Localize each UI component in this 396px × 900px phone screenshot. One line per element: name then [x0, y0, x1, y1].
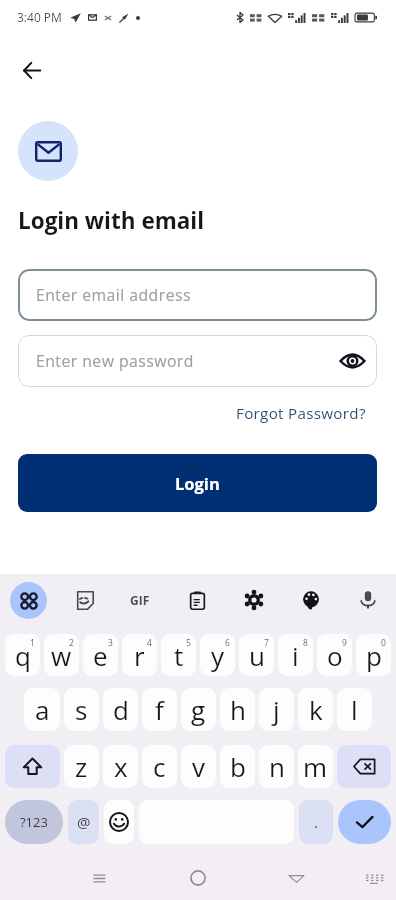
staticText: w — [51, 638, 72, 673]
button[interactable]: Login — [18, 454, 377, 512]
button[interactable]: n — [259, 745, 294, 788]
staticText: z — [75, 749, 88, 784]
staticText: a — [35, 692, 50, 727]
button[interactable]: Home — [178, 858, 218, 898]
staticText: k — [309, 692, 323, 727]
staticText: y — [211, 638, 225, 673]
button[interactable]: v — [181, 745, 216, 788]
button[interactable]: @ — [68, 800, 99, 844]
button[interactable]: p — [356, 634, 391, 676]
button[interactable]: r — [122, 634, 157, 676]
button[interactable]: t — [161, 634, 196, 676]
button[interactable]: c — [142, 745, 177, 788]
staticText: e — [93, 638, 108, 673]
button[interactable]: y — [200, 634, 235, 676]
button[interactable]: e — [83, 634, 118, 676]
button[interactable]: Enter — [338, 800, 391, 844]
button[interactable]: Recents — [79, 858, 119, 898]
button[interactable]: b — [220, 745, 255, 788]
staticText: c — [153, 749, 166, 784]
button[interactable]: ?123 — [5, 800, 63, 844]
staticText: l — [351, 692, 358, 727]
button[interactable]: a — [24, 688, 60, 731]
staticText: j — [273, 692, 280, 727]
staticText: 3 — [108, 637, 113, 649]
button[interactable]: Stickers — [65, 581, 103, 619]
button[interactable]: i — [278, 634, 313, 676]
staticText: 6 — [225, 637, 230, 649]
staticText: x — [114, 749, 128, 784]
staticText: t — [174, 638, 184, 673]
staticText: 3:40 PM — [17, 9, 62, 25]
button[interactable]: Enter email address — [18, 269, 377, 321]
button[interactable]: j — [259, 688, 294, 731]
button[interactable]: Forgot Password? — [232, 400, 370, 427]
button[interactable]: w — [44, 634, 79, 676]
button[interactable]: Clipboard — [178, 581, 216, 619]
staticText: GIF — [130, 592, 150, 608]
button[interactable]: s — [64, 688, 99, 731]
staticText: m — [303, 749, 328, 784]
button[interactable]: q — [5, 634, 40, 676]
staticText: g — [191, 692, 206, 727]
staticText: Login — [175, 472, 220, 494]
staticText: r — [134, 638, 145, 673]
button[interactable]: Backspace — [337, 745, 391, 788]
button[interactable]: z — [64, 745, 99, 788]
button[interactable]: Back — [276, 858, 316, 898]
staticText: v — [192, 749, 205, 784]
staticText: u — [249, 638, 265, 673]
staticText: Login with email — [18, 205, 205, 236]
button[interactable]: Settings — [235, 581, 273, 619]
button[interactable]: Keyboard toolbar — [10, 582, 47, 619]
button[interactable]: x — [103, 745, 138, 788]
staticText: i — [292, 638, 299, 673]
staticText: 4 — [147, 637, 152, 649]
button[interactable]: Back — [13, 52, 50, 89]
button[interactable]: Show password — [335, 344, 369, 378]
button[interactable]: Shift — [5, 745, 60, 788]
staticText: . — [314, 812, 318, 832]
staticText: 0 — [381, 637, 386, 649]
button[interactable]: u — [239, 634, 274, 676]
button[interactable]: f — [142, 688, 177, 731]
staticText: Enter email address — [36, 284, 191, 306]
staticText: q — [15, 638, 31, 673]
staticText: 2 — [69, 637, 74, 649]
button[interactable]: h — [220, 688, 255, 731]
staticText: Enter new password — [36, 350, 194, 372]
button[interactable]: Keyboard switcher — [354, 858, 394, 898]
button[interactable]: . — [299, 800, 333, 844]
button[interactable]: Enter new password — [18, 335, 377, 387]
staticText: @ — [77, 812, 91, 832]
staticText: 9 — [342, 637, 347, 649]
staticText: s — [75, 692, 88, 727]
button[interactable]: GIF — [121, 581, 159, 619]
button[interactable]: m — [298, 745, 333, 788]
staticText: d — [113, 692, 129, 727]
staticText: f — [155, 692, 164, 727]
staticText: 7 — [264, 637, 269, 649]
staticText: b — [230, 749, 246, 784]
button[interactable]: o — [317, 634, 352, 676]
staticText: p — [366, 638, 382, 673]
button[interactable]: Voice input — [349, 581, 387, 619]
staticText: 8 — [303, 637, 308, 649]
staticText: ?123 — [20, 813, 48, 831]
staticText: n — [269, 749, 285, 784]
staticText: 1 — [30, 637, 35, 649]
button[interactable]: l — [337, 688, 372, 731]
button[interactable]: d — [103, 688, 138, 731]
staticText: h — [230, 692, 246, 727]
button[interactable]: k — [298, 688, 333, 731]
button[interactable]: Emoji — [104, 800, 134, 844]
staticText: 5 — [186, 637, 191, 649]
staticText: o — [327, 638, 343, 673]
button[interactable]: g — [181, 688, 216, 731]
button[interactable]: Theme — [292, 581, 330, 619]
